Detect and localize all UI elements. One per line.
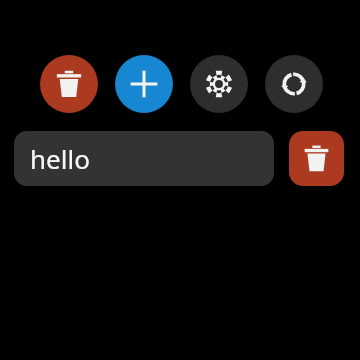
button[interactable]: Delete all: [40, 55, 98, 113]
button[interactable]: hello: [14, 131, 274, 186]
staticText: hello: [30, 141, 90, 176]
button[interactable]: Refresh: [265, 55, 323, 113]
button[interactable]: Settings: [190, 55, 248, 113]
button[interactable]: Add item: [115, 55, 173, 113]
button[interactable]: Delete: [289, 131, 344, 186]
